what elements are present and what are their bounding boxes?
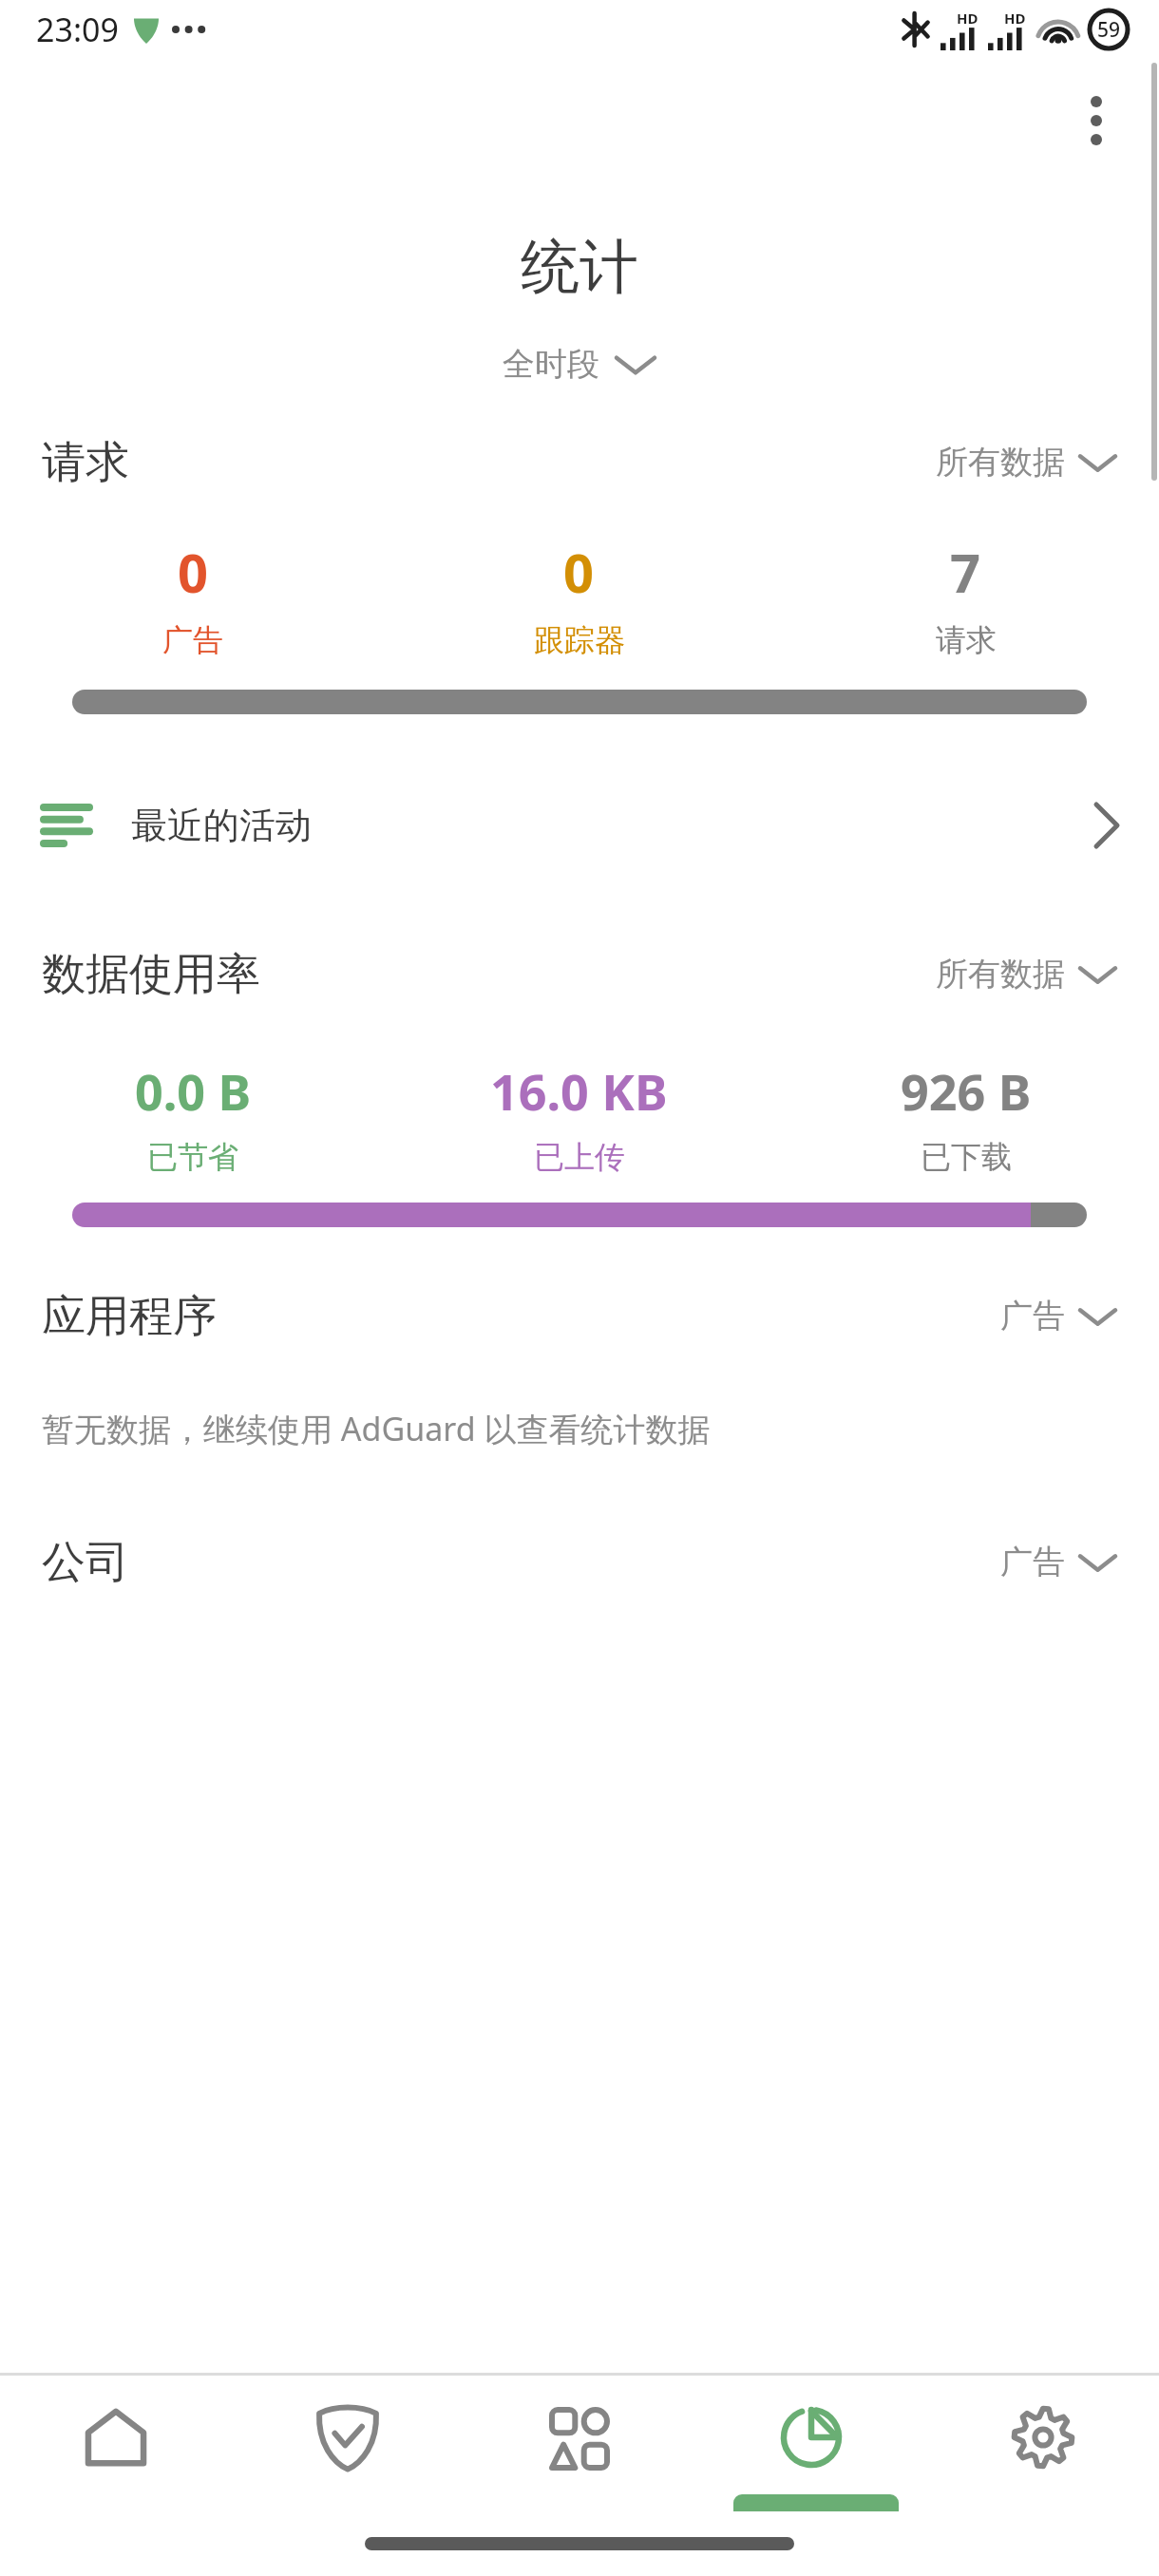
staticText: 全时段	[503, 344, 599, 385]
staticText: 最近的活动	[131, 803, 312, 848]
staticText: 0	[178, 536, 209, 608]
staticText: 广告	[1000, 1296, 1065, 1336]
staticText: 广告	[162, 621, 223, 659]
button[interactable]: Home	[0, 2376, 232, 2511]
staticText: 暂无数据，继续使用 AdGuard 以查看统计数据	[42, 1407, 711, 1450]
staticText: 926 B	[901, 1057, 1032, 1125]
button[interactable]: Protection	[232, 2376, 464, 2511]
button[interactable]: 7	[772, 536, 1159, 659]
staticText: 已下载	[921, 1138, 1012, 1176]
staticText: 59	[1097, 16, 1121, 44]
button[interactable]: Statistics	[695, 2376, 927, 2511]
staticText: 数据使用率	[42, 947, 260, 1002]
button[interactable]: 0	[386, 536, 772, 659]
button[interactable]: Settings	[927, 2376, 1159, 2511]
staticText: 0	[563, 536, 595, 608]
staticText: 7	[950, 536, 981, 608]
staticText: 16.0 KB	[490, 1057, 668, 1125]
staticText: HD	[957, 9, 978, 28]
staticText: 请求	[42, 435, 129, 490]
button[interactable]: 广告	[1000, 1282, 1117, 1350]
button[interactable]: 所有数据	[936, 940, 1117, 1008]
button[interactable]: 0.0 B	[0, 1057, 386, 1176]
staticText: 广告	[1000, 1542, 1065, 1582]
button[interactable]: 926 B	[772, 1057, 1159, 1176]
staticText: 已上传	[534, 1138, 625, 1176]
button[interactable]: 广告	[1000, 1528, 1117, 1596]
button[interactable]: 16.0 KB	[386, 1057, 772, 1176]
button[interactable]: More options	[1056, 81, 1136, 161]
staticText: 23:09	[36, 8, 119, 51]
button[interactable]: 最近的活动	[0, 773, 1159, 878]
staticText: 跟踪器	[534, 621, 625, 659]
staticText: 所有数据	[936, 954, 1065, 994]
staticText: 公司	[42, 1535, 129, 1590]
staticText: 0.0 B	[135, 1057, 252, 1125]
staticText: HD	[1004, 9, 1026, 28]
staticText: 所有数据	[936, 442, 1065, 483]
staticText: 请求	[936, 621, 997, 659]
staticText: 已节省	[147, 1138, 238, 1176]
button[interactable]: 全时段	[380, 344, 779, 385]
staticText: 统计	[0, 230, 1159, 304]
button[interactable]: 所有数据	[936, 428, 1117, 496]
staticText: 应用程序	[42, 1289, 217, 1344]
button[interactable]: Apps	[464, 2376, 695, 2511]
button[interactable]: 0	[0, 536, 386, 659]
